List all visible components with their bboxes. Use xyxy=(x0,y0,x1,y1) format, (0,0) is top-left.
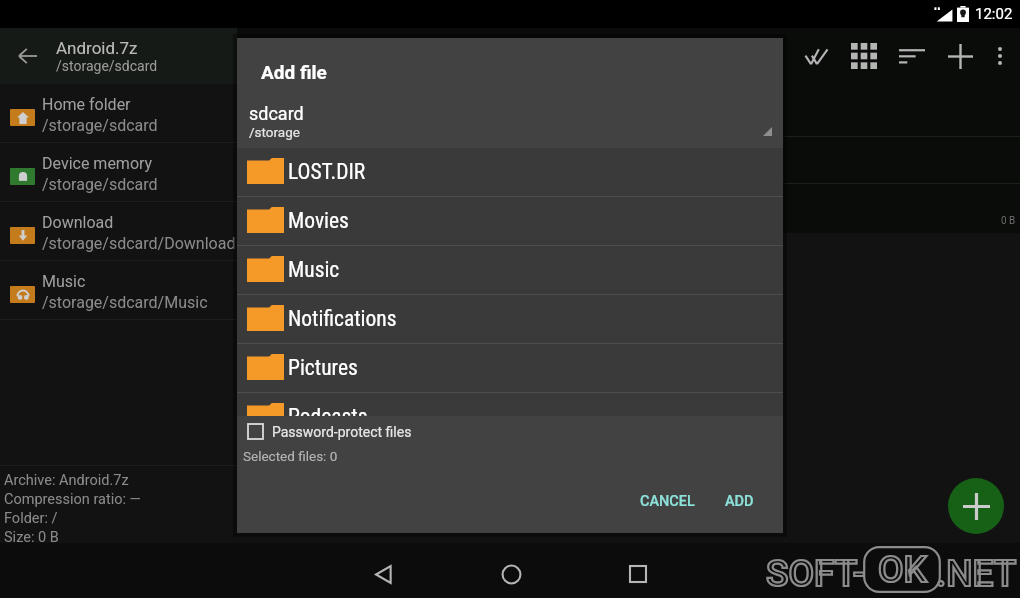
button[interactable]: sdcard xyxy=(237,97,783,144)
button[interactable]: Notifications xyxy=(237,295,783,344)
staticText: Compression ratio: — xyxy=(4,491,141,510)
button[interactable]: Password-protect files xyxy=(243,419,416,444)
staticText: Device memory xyxy=(42,154,153,173)
staticText: .NET xyxy=(936,552,1017,595)
staticText: Archive: Android.7z xyxy=(4,472,129,491)
button[interactable]: Sort xyxy=(888,32,936,80)
staticText: /storage/sdcard/Music xyxy=(42,293,208,312)
staticText: sdcard xyxy=(249,103,304,124)
staticText: ADD xyxy=(725,493,754,510)
button[interactable]: LOST.DIR xyxy=(237,148,783,197)
staticText: /storage/sdcard/Download xyxy=(42,234,236,253)
button[interactable]: Home folder xyxy=(0,84,237,143)
staticText: Size: 0 B xyxy=(4,529,59,548)
button[interactable]: Add xyxy=(936,32,984,80)
staticText: Notifications xyxy=(288,306,397,331)
button[interactable]: Movies xyxy=(237,197,783,246)
staticText: Selected files: 0 xyxy=(243,448,338,464)
staticText: Android.7z xyxy=(56,38,138,58)
staticText: Add file xyxy=(261,61,327,83)
button[interactable]: Add file xyxy=(948,478,1004,534)
staticText: SOFT- xyxy=(766,552,866,595)
staticText: Podcasts xyxy=(288,404,368,416)
staticText: Movies xyxy=(288,208,349,233)
button[interactable]: Home xyxy=(487,550,535,598)
staticText: /storage/sdcard xyxy=(42,175,158,194)
button[interactable]: Podcasts xyxy=(237,393,783,416)
button[interactable]: ADD xyxy=(717,487,762,516)
button[interactable]: Back xyxy=(4,32,52,80)
staticText: Home folder xyxy=(42,95,131,114)
staticText: OK xyxy=(878,548,927,591)
staticText: /storage xyxy=(249,124,300,140)
button[interactable]: Grid view xyxy=(840,32,888,80)
button[interactable]: More options xyxy=(984,32,1015,80)
button[interactable]: Recent apps xyxy=(614,550,662,598)
button[interactable]: Music xyxy=(237,246,783,295)
button[interactable]: Back xyxy=(0,28,237,84)
staticText: 12:02 xyxy=(975,5,1013,23)
button[interactable]: CANCEL xyxy=(632,487,703,516)
staticText: Password-protect files xyxy=(272,424,412,440)
staticText: 0 B xyxy=(1001,215,1016,227)
staticText: /storage/sdcard xyxy=(56,58,158,74)
button[interactable]: Music xyxy=(0,261,237,320)
button[interactable]: Download xyxy=(0,202,237,261)
staticText: Download xyxy=(42,213,114,232)
staticText: Music xyxy=(288,257,340,282)
staticText: Music xyxy=(42,272,86,291)
staticText: Folder: / xyxy=(4,510,58,529)
staticText: LOST.DIR xyxy=(288,159,366,184)
button[interactable]: Pictures xyxy=(237,344,783,393)
button[interactable]: Back xyxy=(359,550,407,598)
button[interactable]: Select all xyxy=(792,32,840,80)
staticText: Pictures xyxy=(288,355,358,380)
staticText: /storage/sdcard xyxy=(42,116,158,135)
button[interactable]: Device memory xyxy=(0,143,237,202)
staticText: CANCEL xyxy=(640,493,695,510)
